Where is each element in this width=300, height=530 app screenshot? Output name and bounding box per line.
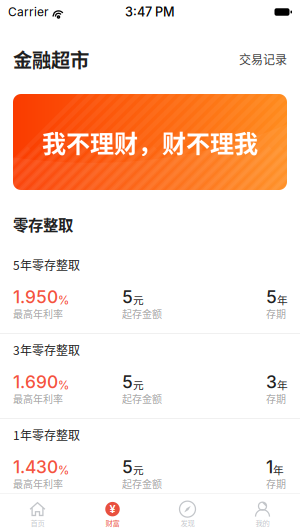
- staticText: 我的: [255, 517, 269, 528]
- staticText: 5: [266, 286, 277, 307]
- staticText: 5: [122, 371, 133, 392]
- staticText: 财富: [105, 517, 119, 528]
- button[interactable]: ¥: [75, 494, 150, 530]
- staticText: 最高年利率: [13, 306, 63, 321]
- staticText: 1.950: [13, 286, 58, 307]
- button[interactable]: 首页: [0, 494, 75, 530]
- staticText: 3年零存整取: [13, 341, 80, 358]
- staticText: 存期: [266, 306, 286, 321]
- staticText: 5年零存整取: [13, 256, 80, 273]
- staticText: 起存金额: [122, 306, 162, 321]
- staticText: ¥: [109, 503, 115, 516]
- staticText: 1年零存整取: [13, 426, 80, 443]
- staticText: Carrier: [8, 5, 49, 19]
- staticText: %: [58, 379, 69, 392]
- staticText: 1.690: [13, 371, 58, 392]
- staticText: 起存金额: [122, 476, 162, 491]
- button[interactable]: 交易记录: [239, 50, 287, 68]
- staticText: 最高年利率: [13, 476, 63, 491]
- staticText: 首页: [30, 517, 44, 528]
- button[interactable]: 1年零存整取: [0, 419, 300, 503]
- staticText: 元: [133, 462, 144, 477]
- button[interactable]: 3年零存整取: [0, 334, 300, 418]
- staticText: 存期: [266, 476, 286, 491]
- staticText: 年: [277, 377, 288, 392]
- staticText: 交易记录: [239, 50, 287, 68]
- staticText: 年: [277, 292, 288, 307]
- staticText: 金融超市: [13, 45, 89, 73]
- staticText: 存期: [266, 391, 286, 406]
- staticText: 年: [273, 462, 284, 477]
- staticText: 1.430: [13, 456, 58, 477]
- staticText: 5: [122, 286, 133, 307]
- staticText: 元: [133, 377, 144, 392]
- staticText: 5: [122, 456, 133, 477]
- staticText: 我不理财，财不理我: [42, 125, 258, 159]
- staticText: 发现: [180, 517, 194, 528]
- button[interactable]: 5年零存整取: [0, 249, 300, 333]
- staticText: 1: [266, 456, 273, 477]
- button[interactable]: 发现: [150, 494, 225, 530]
- staticText: %: [58, 464, 69, 477]
- button[interactable]: 我不理财，财不理我: [13, 94, 287, 190]
- staticText: 3:47 PM: [125, 4, 175, 20]
- staticText: %: [58, 294, 69, 307]
- button[interactable]: 我的: [225, 494, 300, 530]
- staticText: 3: [266, 371, 277, 392]
- staticText: 起存金额: [122, 391, 162, 406]
- staticText: 元: [133, 292, 144, 307]
- staticText: 零存整取: [13, 213, 73, 235]
- staticText: 最高年利率: [13, 391, 63, 406]
